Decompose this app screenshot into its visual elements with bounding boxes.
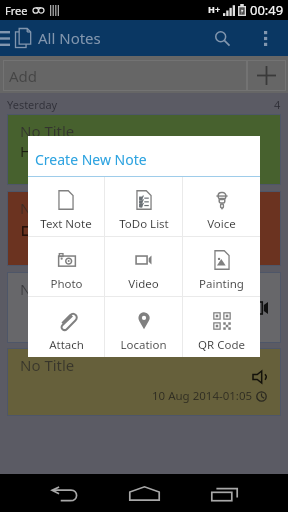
button[interactable]: Add [3,60,247,91]
button[interactable]: Attach [28,297,104,357]
staticText: ToDo List [119,216,169,232]
button[interactable]: Text Note [28,177,104,236]
staticText: 4 [274,97,281,112]
button[interactable]: Recent apps [184,474,264,512]
staticText: Voice [207,216,236,232]
staticText: Yesterday [7,97,58,112]
button[interactable]: Video [105,237,182,296]
staticText: No Title [20,355,75,375]
staticText: No Title [20,279,75,299]
staticText: H+ [208,3,221,15]
button[interactable]: More options [243,20,288,56]
staticText: Free [5,3,28,18]
button[interactable]: Back [24,474,104,512]
button[interactable]: Painting [183,237,260,296]
button[interactable]: Open navigation drawer [0,20,13,56]
button[interactable]: Location [105,297,182,357]
button[interactable]: Voice [183,177,260,236]
staticText: Painting [199,276,244,292]
staticText: Add [9,66,38,86]
staticText: Text Note [40,216,92,232]
staticText: Location [120,337,167,353]
staticText: 00:49 [250,1,284,19]
button[interactable]: ToDo List [105,177,182,236]
staticText: No Title [20,121,75,141]
staticText: QR Code [198,337,245,353]
staticText: No Title [20,198,75,218]
staticText: HI [20,141,37,161]
other: Video attachment [252,302,268,314]
staticText: Photo [50,276,83,292]
staticText: Create New Note [35,150,147,169]
button[interactable]: No Title [8,349,280,415]
staticText: Attach [49,337,84,353]
button[interactable]: QR Code [183,297,260,357]
button[interactable]: Search [201,20,243,56]
staticText: All Notes [38,28,101,48]
staticText: 10 Aug 2014-01:05 [152,388,253,404]
button[interactable]: Photo [28,237,104,296]
button[interactable]: No Title [8,192,280,265]
button[interactable]: Add note [247,60,286,91]
staticText: Video [128,276,159,292]
button[interactable]: No Title [8,115,280,184]
button[interactable]: Home [104,474,184,512]
button[interactable]: No Title [8,273,280,342]
other: Audio attachment [253,371,267,383]
